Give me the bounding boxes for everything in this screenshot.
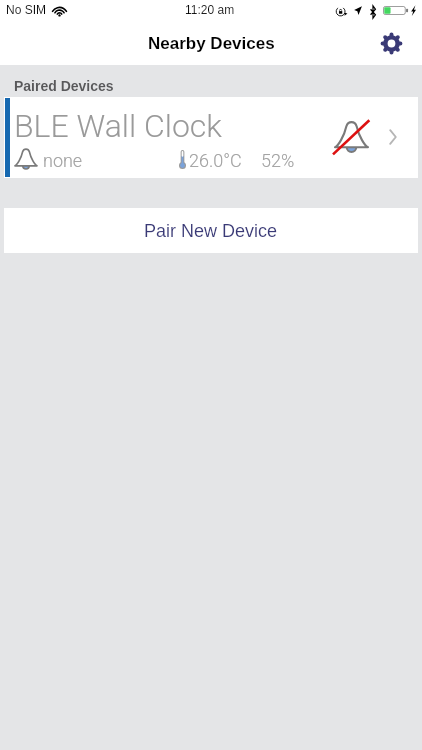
staticText: 52%: [261, 150, 295, 171]
staticText: 26.0°C: [189, 150, 242, 171]
staticText: Pair New Device: [144, 221, 278, 241]
button[interactable]: Settings: [369, 23, 413, 65]
staticText: Paired Devices: [14, 78, 114, 94]
staticText: No SIM: [6, 3, 47, 16]
staticText: none: [43, 150, 83, 171]
button[interactable]: Pair New Device: [4, 208, 418, 253]
staticText: 11:20 am: [185, 3, 235, 16]
button[interactable]: BLE Wall Clock: [4, 97, 418, 178]
staticText: BLE Wall Clock: [14, 107, 223, 145]
button[interactable]: Notifications muted: [312, 103, 380, 171]
staticText: Nearby Devices: [148, 34, 275, 53]
